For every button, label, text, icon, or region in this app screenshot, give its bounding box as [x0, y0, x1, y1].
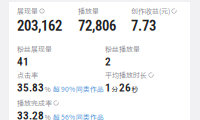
staticText: 7.73 — [131, 17, 156, 34]
staticText: 1 — [105, 81, 111, 94]
staticText: 203,162 — [17, 17, 62, 34]
staticText: % — [44, 112, 50, 120]
staticText: 超 56% 同类作品 — [53, 112, 104, 120]
staticText: 超 90% 同类作品 — [53, 84, 104, 94]
button[interactable]: 播放量 — [78, 6, 116, 33]
staticText: 创作收益(元) — [131, 6, 170, 16]
staticText: 平均播放时长 — [105, 70, 147, 80]
staticText: % — [44, 84, 50, 94]
staticText: 分 — [111, 84, 118, 94]
staticText: 33.28 — [17, 109, 44, 120]
staticText: 72,806 — [78, 17, 116, 34]
staticText: 粉丝播放量 — [105, 44, 140, 54]
staticText: 点击率 — [17, 70, 38, 80]
button[interactable]: 创作收益(元) — [131, 6, 176, 33]
staticText: 展现量 — [17, 6, 38, 16]
staticText: 粉丝展现量 — [17, 44, 52, 54]
staticText: 播放量 — [78, 6, 99, 16]
button[interactable]: 展现量 — [17, 6, 62, 33]
staticText: 35.83 — [17, 81, 44, 94]
staticText: 41 — [17, 55, 29, 68]
staticText: 秒 — [131, 84, 138, 94]
staticText: 播放完成率 — [17, 98, 52, 108]
staticText: 2 — [105, 55, 111, 68]
staticText: 26 — [119, 81, 131, 94]
